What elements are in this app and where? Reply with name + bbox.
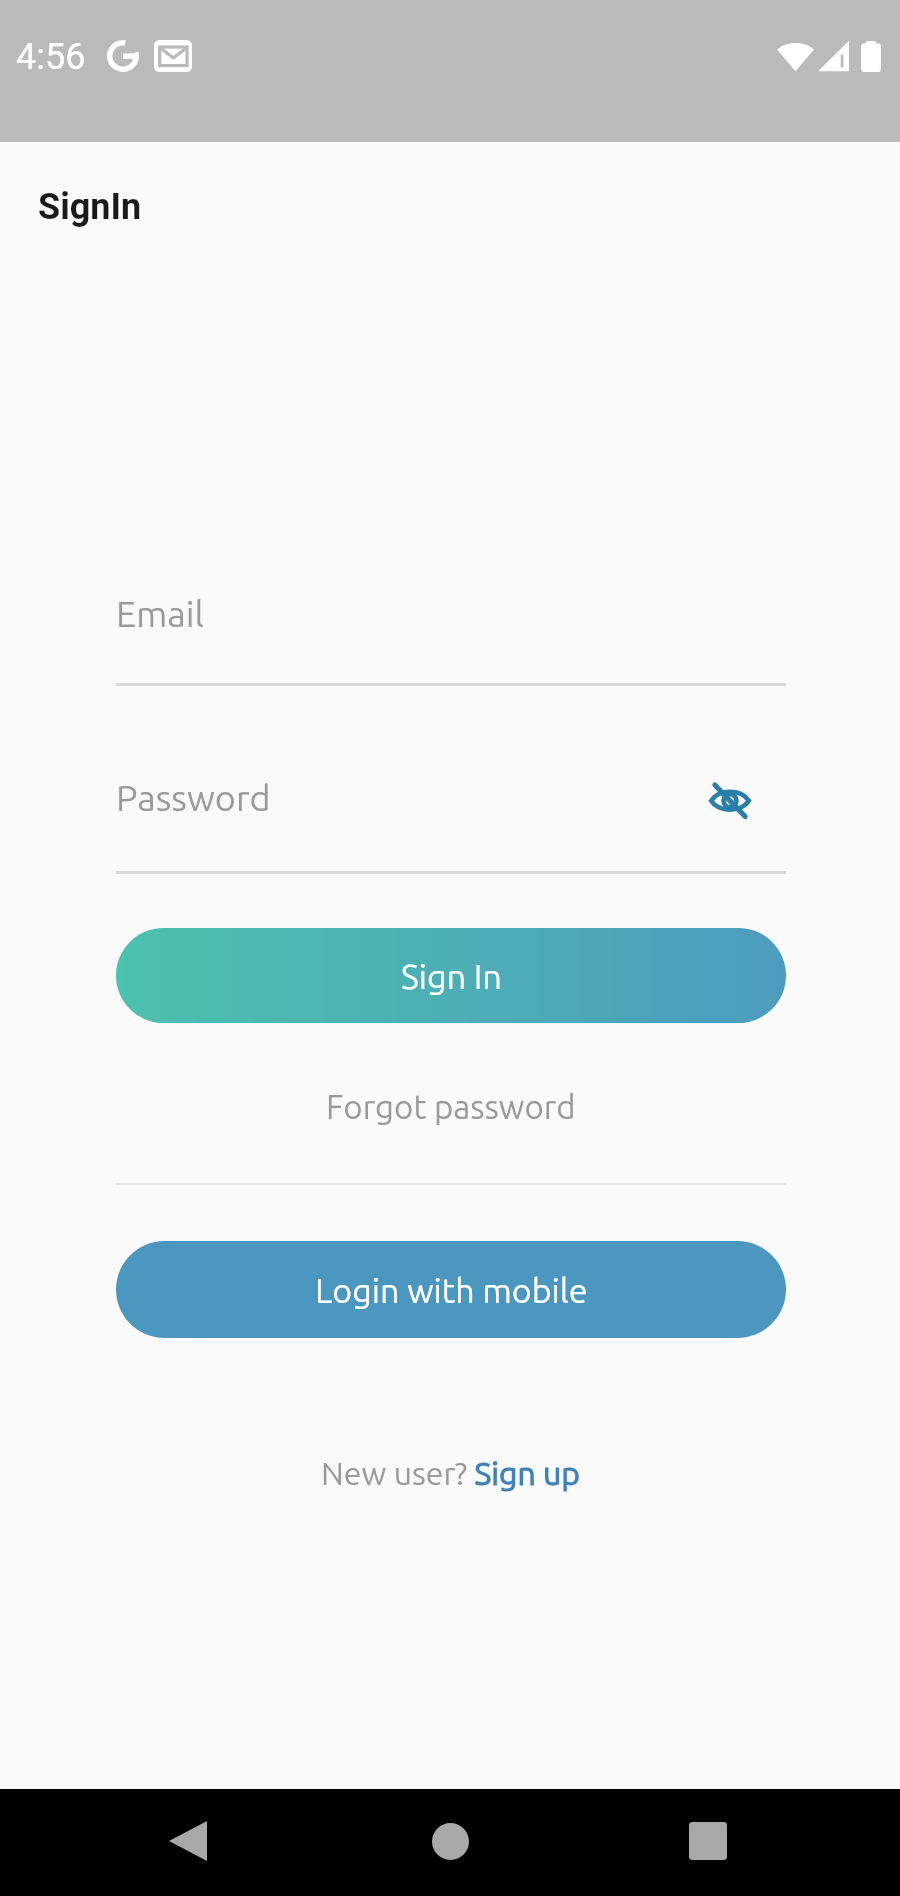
staticText: Sign In	[401, 957, 502, 995]
staticText: Email	[116, 593, 204, 633]
button[interactable]: Sign In	[116, 928, 786, 1023]
button[interactable]: Login with mobile	[116, 1241, 786, 1338]
staticText: Forgot password	[326, 1088, 576, 1125]
staticText: 4:56	[16, 36, 86, 76]
button[interactable]: Recent apps	[658, 1791, 758, 1891]
button[interactable]: Home	[400, 1791, 500, 1891]
button[interactable]: Password	[116, 769, 786, 872]
button[interactable]: New user? Sign up	[116, 1447, 786, 1499]
staticText: New user? Sign up	[321, 1455, 581, 1491]
staticText: SignIn	[38, 186, 142, 228]
staticText: Password	[116, 777, 271, 817]
button[interactable]: Forgot password	[116, 1078, 786, 1134]
button[interactable]: Email	[116, 585, 786, 684]
staticText: Login with mobile	[315, 1271, 588, 1309]
button[interactable]: Back	[138, 1791, 238, 1891]
button[interactable]: Show password	[700, 770, 760, 830]
